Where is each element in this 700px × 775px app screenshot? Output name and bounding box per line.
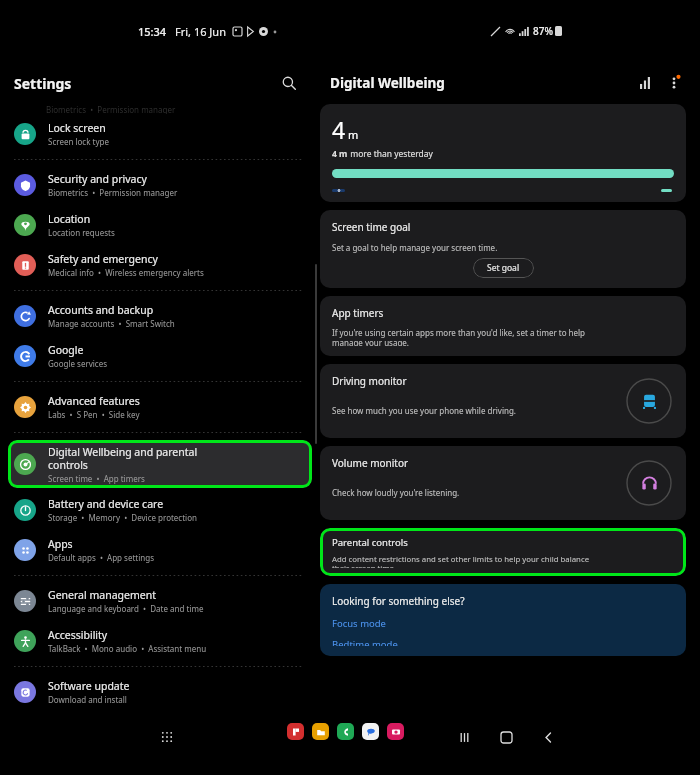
staticText: m [348,127,359,142]
button[interactable]: Safety and emergency [8,247,312,283]
staticText: Advanced features [48,394,140,408]
staticText: 4 m [332,148,348,160]
button[interactable]: Screen time goal [320,210,686,288]
staticText: Location requests [48,227,115,238]
button[interactable]: Recents [452,725,476,749]
button[interactable]: Apps [155,725,179,749]
button[interactable]: Battery and device care [8,492,312,528]
staticText: Security and privacy [48,172,147,186]
staticText: Battery and device care [48,497,164,511]
staticText: Add content restrictions and set other l… [332,554,590,568]
button[interactable]: Usage chart [634,71,658,95]
staticText: Focus mode [332,617,386,630]
staticText: Accessibility [48,628,108,642]
button[interactable]: camera [387,723,404,740]
staticText: more than yesterday [348,148,433,160]
button[interactable]: Advanced features [8,389,312,425]
staticText: 87% [533,24,553,38]
staticText: Screen lock type [48,136,109,147]
button[interactable]: flipboard [287,723,304,740]
staticText: Default apps • App settings [48,552,154,563]
button[interactable]: Parental controls [320,528,686,576]
button[interactable]: Google [8,338,312,374]
button[interactable]: phone [337,723,354,740]
staticText: Accounts and backup [48,303,154,317]
staticText: Download and install [48,694,127,705]
staticText: Screen time • App timers [48,473,145,484]
staticText: Apps [48,537,73,551]
staticText: See how much you use your phone while dr… [332,405,516,416]
staticText: Lock screen [48,121,106,135]
staticText: Digital Wellbeing and parental controls [48,445,198,472]
button[interactable]: App timers [320,296,686,356]
button[interactable]: Accounts and backup [8,298,312,334]
staticText: Bedtime mode [332,638,398,646]
staticText: Safety and emergency [48,252,158,266]
button[interactable]: Apps [8,532,312,568]
button[interactable]: Back [536,725,560,749]
button[interactable]: Security and privacy [8,167,312,203]
staticText: Storage • Memory • Device protection [48,512,197,523]
button[interactable]: Focus mode [332,617,386,630]
button[interactable]: files [312,723,329,740]
button[interactable]: Location [8,207,312,243]
staticText: Digital Wellbeing [330,74,445,92]
staticText: Check how loudly you're listening. [332,487,460,498]
staticText: Set a goal to help manage your screen ti… [332,242,498,253]
staticText: Medical info • Wireless emergency alerts [48,267,204,278]
staticText: Looking for something else? [332,594,465,608]
staticText: If you're using certain apps more than y… [332,327,586,346]
staticText: Software update [48,679,130,693]
staticText: Google [48,343,84,357]
button[interactable]: Accessibility [8,623,312,659]
staticText: Parental controls [332,536,408,549]
button[interactable]: Driving monitor [320,364,686,438]
button[interactable]: Software update [8,674,312,710]
button[interactable]: Digital Wellbeing and parental controls [8,440,312,488]
staticText: Biometrics • Permission manager [46,104,176,114]
staticText: Fri, 16 Jun [175,24,226,39]
staticText: App timers [332,306,384,320]
staticText: Volume monitor [332,456,409,470]
button[interactable]: More options [662,71,686,95]
staticText: 4 [332,114,346,145]
staticText: Manage accounts • Smart Switch [48,318,175,329]
staticText: Labs • S Pen • Side key [48,409,140,420]
button[interactable]: 4 [320,104,686,202]
button[interactable]: Bedtime mode [332,638,398,646]
staticText: General management [48,588,156,602]
staticText: 15:34 [138,24,167,39]
button[interactable]: messages [362,723,379,740]
staticText: Driving monitor [332,374,407,388]
button[interactable]: Set goal [473,258,534,278]
button[interactable]: Volume monitor [320,446,686,520]
staticText: Location [48,212,91,226]
button[interactable]: Lock screen [8,116,312,152]
staticText: Biometrics • Permission manager [48,187,178,198]
button[interactable]: Search [276,70,302,96]
button[interactable]: Home [494,725,518,749]
staticText: Screen time goal [332,220,411,234]
staticText: Settings [14,74,72,93]
staticText: TalkBack • Mono audio • Assistant menu [48,643,207,654]
staticText: Language and keyboard • Date and time [48,603,204,614]
staticText: Set goal [487,262,520,274]
staticText: Google services [48,358,108,369]
button[interactable]: General management [8,583,312,619]
